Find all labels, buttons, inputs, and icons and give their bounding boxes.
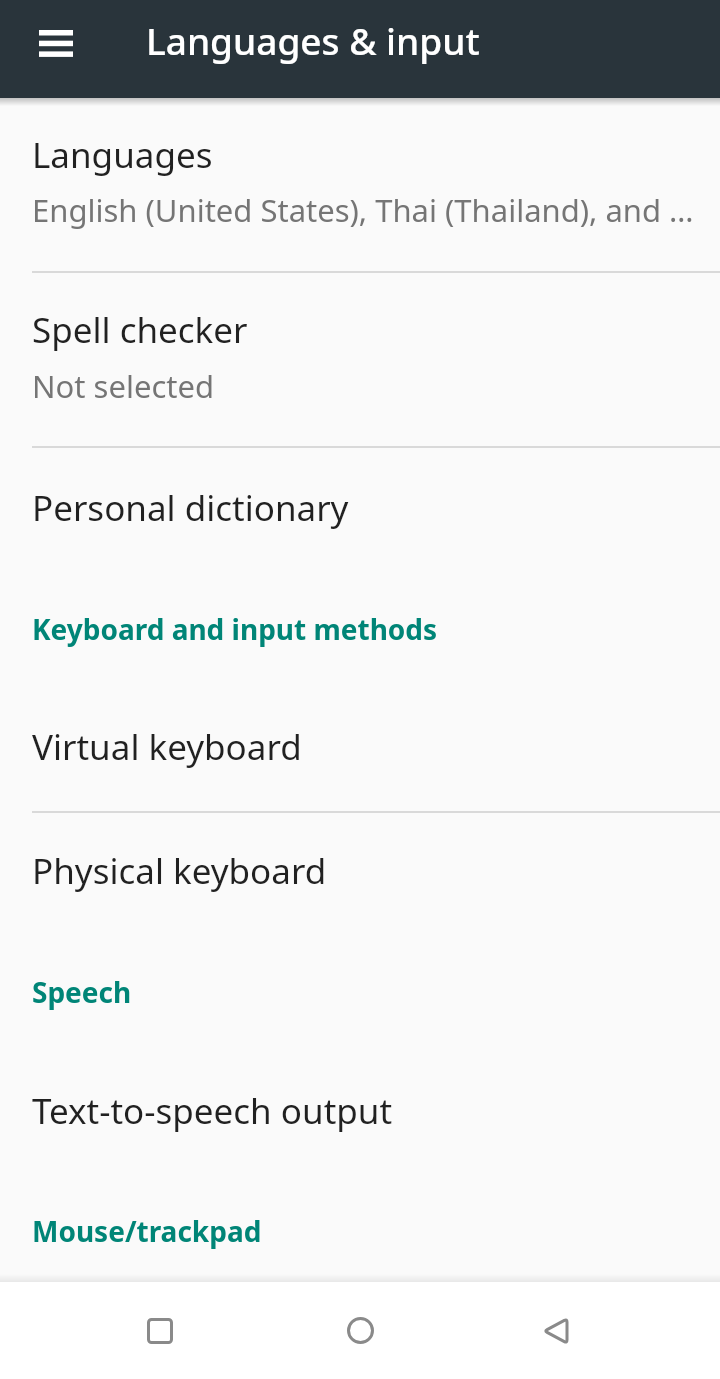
staticText: Virtual keyboard xyxy=(32,723,302,771)
button[interactable]: Physical keyboard xyxy=(0,813,720,933)
staticText: Languages xyxy=(32,131,213,179)
button[interactable]: Languages xyxy=(0,98,720,273)
staticText: Personal dictionary xyxy=(32,484,349,532)
button[interactable] xyxy=(310,1282,410,1379)
button[interactable]: Personal dictionary xyxy=(0,448,720,560)
staticText: Not selected xyxy=(32,365,215,407)
button[interactable] xyxy=(24,18,88,68)
button[interactable] xyxy=(506,1282,606,1379)
staticText: Speech xyxy=(32,973,132,1011)
staticText: Keyboard and input methods xyxy=(32,610,438,648)
button[interactable] xyxy=(110,1282,210,1379)
staticText: Physical keyboard xyxy=(32,847,327,895)
button[interactable]: Text-to-speech output xyxy=(0,1053,720,1173)
staticText: Text-to-speech output xyxy=(32,1087,393,1135)
button[interactable]: Virtual keyboard xyxy=(0,672,720,813)
staticText: Languages & input xyxy=(146,15,480,65)
staticText: Spell checker xyxy=(32,306,248,354)
staticText: English (United States), Thai (Thailand)… xyxy=(32,189,694,231)
staticText: Mouse/trackpad xyxy=(32,1212,262,1250)
button[interactable]: Spell checker xyxy=(0,273,720,448)
